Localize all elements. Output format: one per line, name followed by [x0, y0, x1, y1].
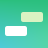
button[interactable]: Outgoing message [5, 26, 27, 36]
button[interactable]: Incoming message [21, 12, 43, 22]
